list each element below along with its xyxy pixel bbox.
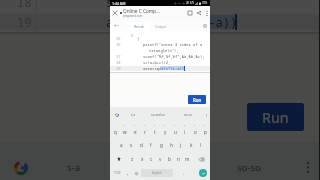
button[interactable]: k	[186, 138, 196, 152]
staticText: Result	[134, 24, 144, 29]
button[interactable]: Google search	[110, 107, 124, 123]
staticText: 40 K/S	[186, 1, 194, 5]
staticText: 6	[164, 124, 166, 127]
staticText: programiz.com	[123, 14, 143, 18]
button[interactable]: 0	[200, 123, 210, 138]
staticText: e	[134, 129, 137, 135]
button[interactable]: 2	[120, 123, 130, 138]
staticText: y	[164, 129, 167, 135]
button[interactable]: ?123	[110, 166, 124, 180]
staticText: p	[204, 129, 207, 135]
staticText: Run	[193, 97, 202, 103]
staticText: 1	[114, 124, 116, 127]
button[interactable]: so-so	[172, 107, 203, 123]
button[interactable]: Share	[194, 6, 203, 20]
staticText: 18	[17, 0, 32, 11]
staticText: 19	[116, 66, 121, 71]
button[interactable]: a	[116, 138, 126, 152]
button[interactable]: 7	[170, 123, 180, 138]
staticText: so-and-so	[151, 113, 165, 117]
staticText: f	[150, 142, 152, 148]
button[interactable]: Emoji	[132, 166, 141, 180]
staticText: o	[194, 129, 197, 135]
button[interactable]: so-and-so	[143, 107, 172, 123]
button[interactable]: x	[137, 152, 147, 166]
staticText: Online C Comp...	[123, 8, 160, 14]
button[interactable]: z	[127, 152, 137, 166]
button[interactable]: English	[141, 169, 173, 177]
button[interactable]: Enter	[195, 166, 210, 180]
button[interactable]: 1	[110, 123, 120, 138]
staticText: 3	[134, 124, 136, 127]
button[interactable]: Backspace	[192, 152, 210, 166]
staticText: scanf("%f,%f,%f",&a,&b,&c);	[143, 54, 205, 59]
button[interactable]: ,	[124, 166, 132, 180]
button[interactable]: Result	[128, 22, 150, 30]
button[interactable]: s-a	[124, 107, 143, 123]
button[interactable]: so-and-so	[105, 142, 199, 180]
button[interactable]: Back	[110, 20, 122, 31]
button[interactable]: 9	[190, 123, 200, 138]
button[interactable]: Output	[150, 22, 172, 30]
staticText: .	[183, 170, 185, 176]
staticText: so-so	[184, 113, 192, 117]
staticText: x	[141, 156, 144, 162]
button[interactable]: Run	[188, 95, 206, 104]
button[interactable]: g	[156, 138, 166, 152]
button[interactable]: l	[196, 138, 206, 152]
button[interactable]: j	[176, 138, 186, 152]
button[interactable]: m	[183, 152, 192, 166]
staticText: area=sqrt(s*(s-a))	[106, 14, 238, 31]
button[interactable]: d	[136, 138, 146, 152]
button[interactable]: 6	[160, 123, 170, 138]
staticText: {	[137, 36, 140, 41]
staticText: s	[130, 142, 133, 148]
button[interactable]: Expand suggestions	[203, 107, 210, 123]
staticText: v	[159, 156, 162, 162]
staticText: b	[168, 156, 171, 162]
staticText: 37%	[202, 1, 208, 5]
button[interactable]: Shift	[110, 152, 127, 166]
button[interactable]: 5	[150, 123, 160, 138]
staticText: 2	[124, 124, 126, 127]
button[interactable]: n	[174, 152, 183, 166]
staticText: Output	[155, 24, 167, 29]
staticText: l	[200, 142, 202, 148]
button[interactable]: Run	[247, 103, 304, 131]
staticText: h	[170, 142, 173, 148]
button[interactable]: 8	[180, 123, 190, 138]
button[interactable]: so-so	[200, 142, 297, 180]
staticText: u	[174, 129, 177, 135]
button[interactable]: c	[147, 152, 156, 166]
staticText: 7	[174, 124, 176, 127]
button[interactable]: 3	[130, 123, 140, 138]
button[interactable]: More options	[203, 6, 210, 20]
button[interactable]: Close	[110, 6, 120, 20]
staticText: j	[180, 142, 182, 148]
button[interactable]: Open in browser	[185, 6, 194, 20]
button[interactable]: f	[146, 138, 156, 152]
button[interactable]: Google search	[0, 142, 43, 180]
staticText: 4	[144, 124, 146, 127]
button[interactable]: s	[126, 138, 136, 152]
button[interactable]: Settings	[199, 20, 210, 31]
staticText: s-a	[67, 161, 81, 174]
button[interactable]: v	[156, 152, 165, 166]
staticText: 16	[116, 42, 121, 47]
staticText: k	[190, 142, 193, 148]
staticText: 5	[154, 124, 156, 127]
staticText: t	[154, 129, 156, 135]
button[interactable]: 4	[140, 123, 150, 138]
staticText: c	[150, 156, 153, 162]
button[interactable]: h	[166, 138, 176, 152]
staticText: English	[152, 171, 162, 175]
button[interactable]: b	[165, 152, 174, 166]
staticText: q	[114, 129, 117, 135]
staticText: 19	[17, 14, 32, 31]
button[interactable]: Expand suggestions	[297, 142, 319, 180]
staticText: m	[185, 156, 190, 162]
staticText: g	[160, 142, 163, 148]
staticText: d	[140, 142, 143, 148]
